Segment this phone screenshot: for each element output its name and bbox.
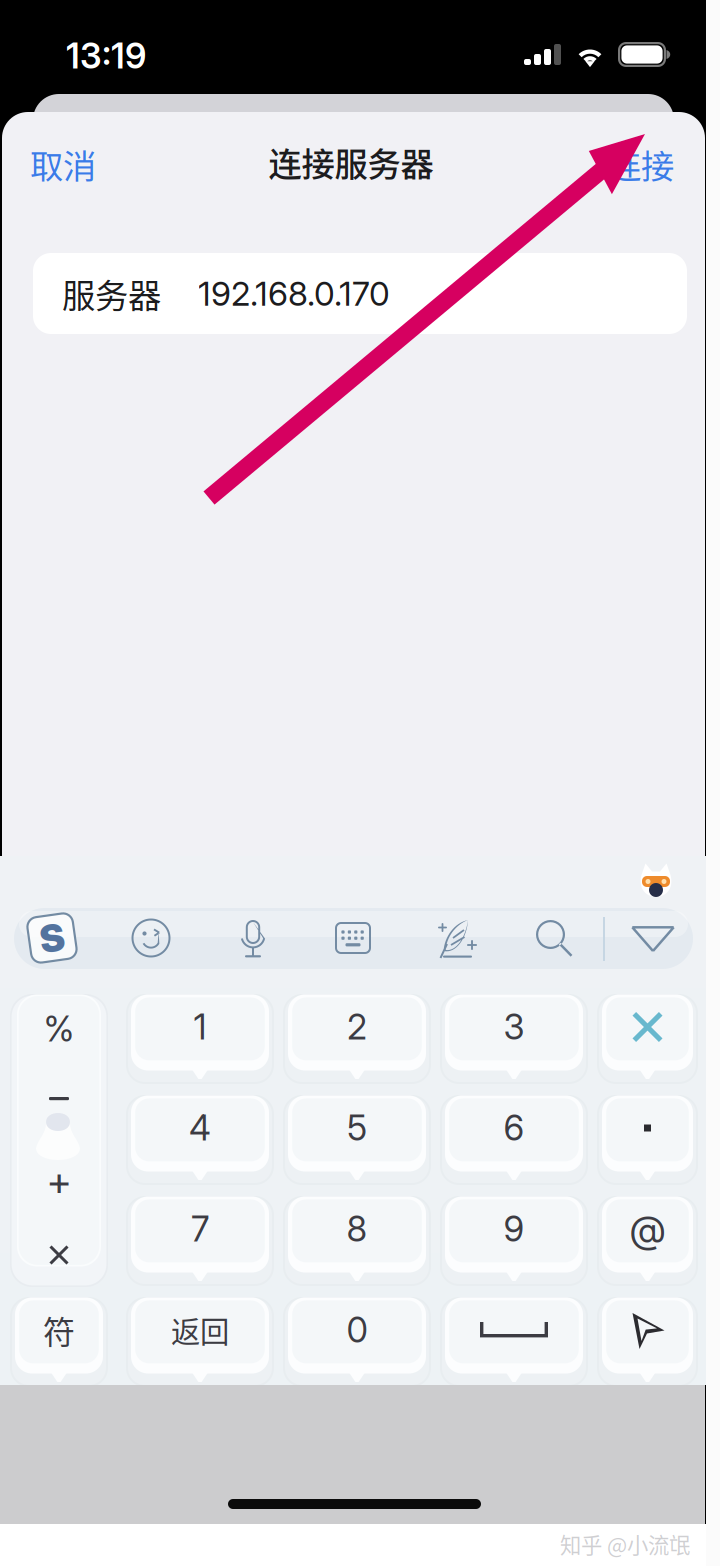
button[interactable]: 服务器 xyxy=(33,253,687,334)
button[interactable]: 1 xyxy=(126,994,274,1084)
button[interactable]: 6 xyxy=(440,1095,588,1185)
button[interactable]: 4 xyxy=(126,1095,274,1185)
button[interactable]: Sogou input xyxy=(28,914,76,962)
staticText: 9 xyxy=(503,1208,524,1250)
button[interactable]: AI writing xyxy=(434,918,478,960)
button[interactable]: Space xyxy=(440,1297,588,1387)
staticText: 5 xyxy=(347,1107,367,1149)
button[interactable]: Send xyxy=(597,1297,698,1387)
button[interactable]: 9 xyxy=(440,1196,588,1286)
button[interactable]: Period xyxy=(597,1095,698,1185)
staticText: 取消 xyxy=(30,140,96,188)
staticText: 符 xyxy=(43,1307,75,1353)
staticText: % xyxy=(43,1008,74,1050)
button[interactable]: 符 xyxy=(10,1297,108,1387)
button[interactable]: 0 xyxy=(283,1297,431,1387)
staticText: 0 xyxy=(346,1309,367,1351)
staticText: 知乎 @小流氓 xyxy=(560,1529,690,1559)
staticText: 服务器 xyxy=(62,269,161,318)
staticText: 8 xyxy=(346,1208,367,1250)
staticText: 连接服务器 xyxy=(268,138,433,186)
staticText: 192.168.0.170 xyxy=(198,273,390,314)
button[interactable]: Profile xyxy=(637,862,675,900)
button[interactable]: 取消 xyxy=(30,132,200,196)
staticText: 1 xyxy=(193,1006,206,1048)
staticText: 连接 xyxy=(608,140,674,188)
button[interactable]: 3 xyxy=(440,994,588,1084)
button[interactable]: Emoji xyxy=(130,917,173,960)
button[interactable]: @ xyxy=(597,1196,698,1286)
staticText: 返回 xyxy=(171,1309,229,1351)
button[interactable]: 5 xyxy=(283,1095,431,1185)
staticText: @ xyxy=(629,1206,665,1252)
button[interactable]: Delete xyxy=(597,994,698,1084)
button[interactable]: Voice input xyxy=(236,919,270,959)
staticText: 4 xyxy=(189,1107,211,1149)
staticText: 6 xyxy=(503,1107,524,1149)
button[interactable]: Hide keyboard xyxy=(631,926,675,952)
button[interactable]: Edit controls xyxy=(10,994,108,1287)
button[interactable]: 8 xyxy=(283,1196,431,1286)
button[interactable]: Keyboard layout xyxy=(335,922,371,954)
button[interactable]: 7 xyxy=(126,1196,274,1286)
button[interactable]: 返回 xyxy=(126,1297,274,1387)
staticText: + xyxy=(46,1157,71,1205)
staticText: 7 xyxy=(191,1208,209,1250)
button[interactable]: Search xyxy=(534,918,574,958)
staticText: 3 xyxy=(503,1006,524,1048)
button[interactable]: 2 xyxy=(283,994,431,1084)
staticText: 2 xyxy=(347,1006,367,1048)
staticText: S xyxy=(39,915,64,961)
button[interactable]: 连接 xyxy=(504,132,674,196)
staticText: 13:19 xyxy=(66,35,146,77)
